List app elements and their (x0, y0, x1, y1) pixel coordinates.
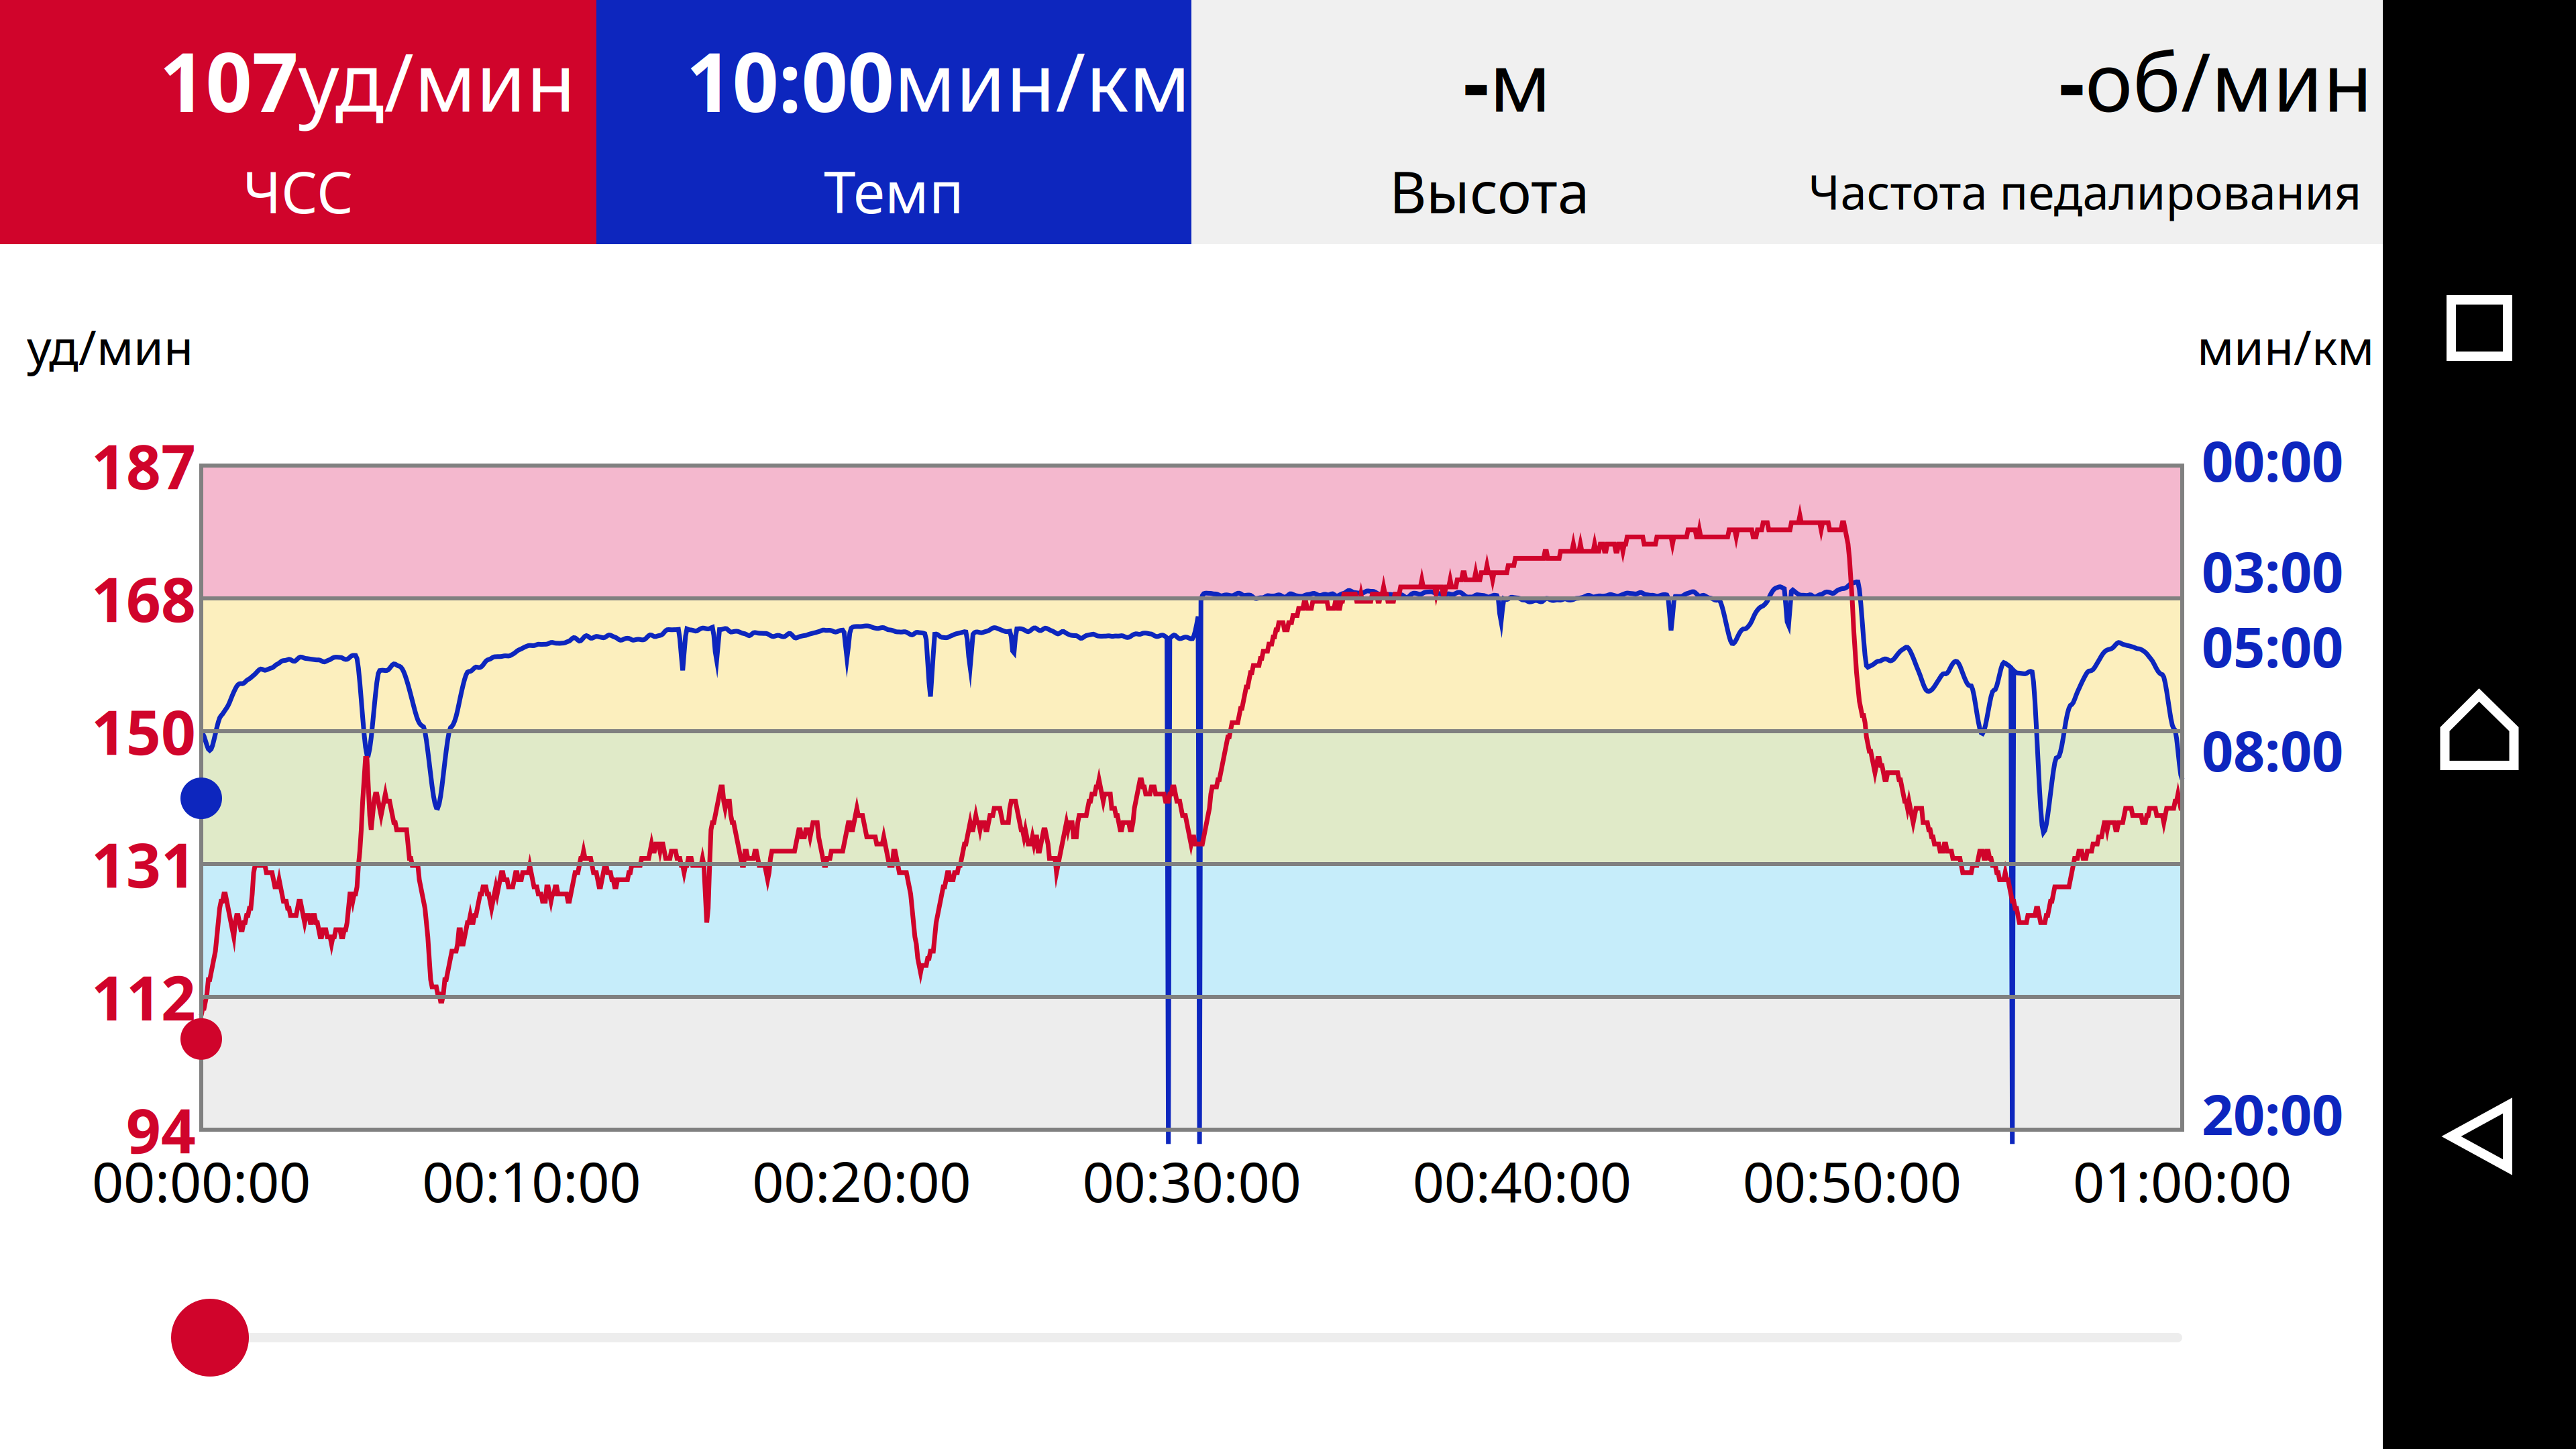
staticText: 94 (126, 1089, 196, 1170)
staticText: 00:10:00 (422, 1144, 641, 1217)
staticText: 00:30:00 (1082, 1144, 1301, 1217)
button[interactable]: Back (2446, 1098, 2513, 1175)
staticText: 05:00 (2202, 609, 2343, 683)
staticText: ЧСС (243, 153, 354, 229)
staticText: 03:00 (2202, 534, 2343, 608)
staticText: 08:00 (2202, 713, 2343, 787)
staticText: уд/мин (27, 314, 193, 378)
staticText: 00:40:00 (1413, 1144, 1631, 1217)
staticText: Темп (824, 153, 964, 229)
staticText: 00:00:00 (92, 1144, 311, 1217)
staticText: 10:00 (686, 26, 894, 135)
staticText: уд/мин (298, 27, 576, 134)
staticText: - (2059, 26, 2085, 135)
staticText: 150 (91, 691, 196, 772)
button[interactable]: 10:00 (596, 0, 1191, 244)
staticText: мин/км (2197, 314, 2374, 378)
staticText: 00:20:00 (752, 1144, 971, 1217)
staticText: Высота (1389, 153, 1589, 229)
button[interactable]: - (1787, 0, 2383, 244)
staticText: 00:50:00 (1743, 1144, 1961, 1217)
staticText: об/мин (2085, 27, 2373, 134)
staticText: 107 (159, 26, 298, 135)
staticText: 112 (91, 956, 196, 1037)
staticText: 20:00 (2202, 1077, 2343, 1150)
staticText: - (1463, 26, 1489, 135)
button[interactable]: 107 (0, 0, 596, 244)
staticText: 131 (91, 824, 196, 904)
staticText: 01:00:00 (2073, 1144, 2292, 1217)
staticText: 187 (91, 425, 196, 506)
staticText: м (1489, 27, 1551, 134)
staticText: 168 (91, 558, 196, 639)
button[interactable]: Recent apps (2447, 295, 2512, 361)
staticText: Частота педалирования (1808, 160, 2362, 223)
button[interactable]: Home (2440, 690, 2519, 770)
staticText: 00:00 (2202, 423, 2343, 497)
button[interactable]: - (1191, 0, 1787, 244)
button[interactable] (0, 1264, 2383, 1411)
staticText: мин/км (894, 27, 1190, 134)
